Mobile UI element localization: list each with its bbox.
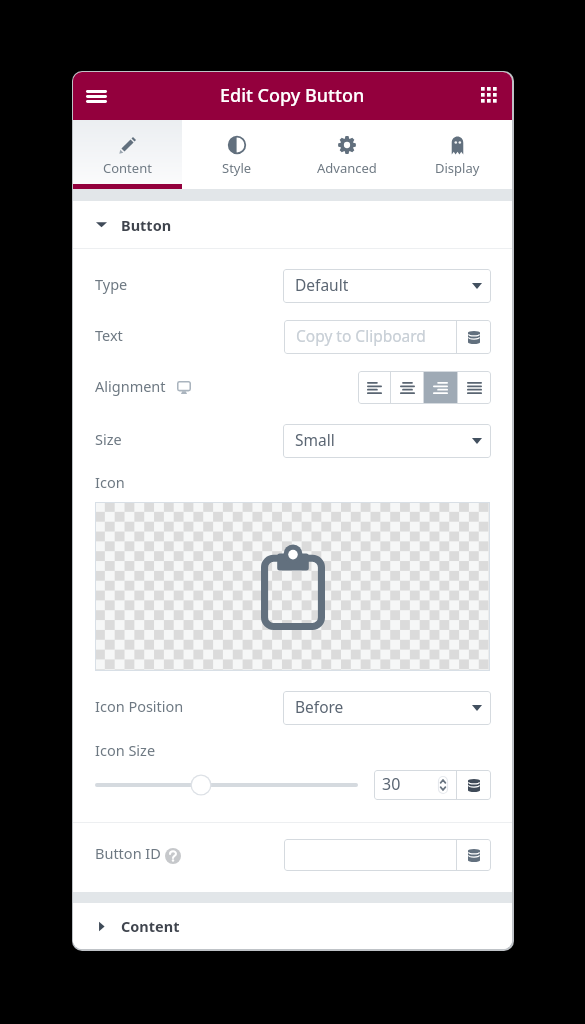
button[interactable]: Align right	[424, 371, 457, 404]
button[interactable]: Small	[283, 424, 491, 458]
button[interactable]: Copy to Clipboard	[284, 320, 456, 354]
button[interactable]: Advanced	[292, 120, 402, 189]
staticText: Content	[103, 159, 152, 177]
staticText: Style	[222, 159, 252, 177]
button[interactable]: Default	[283, 269, 491, 303]
button[interactable]: 30	[374, 770, 456, 800]
button[interactable]: Align left	[358, 371, 390, 404]
button[interactable]: Icon size slider	[95, 770, 358, 800]
staticText: Icon Size	[95, 740, 156, 758]
button[interactable]: Content	[73, 903, 512, 949]
staticText: Before	[295, 696, 344, 717]
button[interactable]: Dynamic tags	[457, 770, 491, 800]
staticText: Button	[121, 215, 172, 235]
staticText: Copy to Clipboard	[296, 325, 426, 346]
staticText: Button ID	[95, 843, 161, 863]
staticText: 30	[382, 773, 401, 795]
staticText: Icon Position	[95, 696, 184, 716]
button[interactable]	[284, 839, 456, 871]
staticText: Default	[295, 274, 349, 295]
staticText: Size	[95, 429, 122, 449]
button[interactable]: Justify	[458, 371, 491, 404]
staticText: Edit Copy Button	[220, 83, 365, 108]
button[interactable]: Content	[73, 120, 182, 189]
button[interactable]: Menu	[75, 75, 117, 117]
staticText: Advanced	[317, 159, 377, 177]
button[interactable]: Style	[182, 120, 292, 189]
button[interactable]: Button	[73, 201, 512, 248]
staticText: Alignment	[95, 376, 166, 396]
button[interactable]: Apps grid	[472, 78, 508, 114]
button[interactable]: Before	[283, 691, 491, 725]
staticText: Icon	[95, 472, 125, 490]
staticText: Small	[295, 429, 335, 450]
staticText: Display	[435, 159, 480, 177]
button[interactable]: Icon preview	[95, 502, 490, 671]
staticText: Content	[121, 916, 180, 936]
staticText: Type	[95, 274, 128, 294]
button[interactable]: Align center	[391, 371, 423, 404]
button[interactable]: Display	[402, 120, 512, 189]
staticText: Text	[95, 325, 123, 345]
button[interactable]: Dynamic tags	[457, 320, 491, 354]
button[interactable]: Dynamic tags	[457, 839, 491, 871]
